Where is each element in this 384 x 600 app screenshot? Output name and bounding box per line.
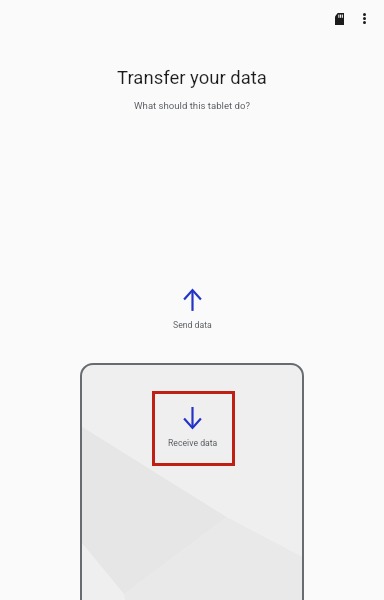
staticText: What should this tablet do? (134, 100, 250, 111)
staticText: Receive data (168, 438, 218, 448)
button[interactable]: Send data (173, 289, 212, 330)
staticText: Send data (173, 320, 212, 330)
button[interactable]: Receive data (152, 391, 235, 466)
button[interactable]: SD card storage (327, 6, 352, 31)
button[interactable]: More options (352, 6, 377, 31)
staticText: Transfer your data (117, 67, 267, 89)
